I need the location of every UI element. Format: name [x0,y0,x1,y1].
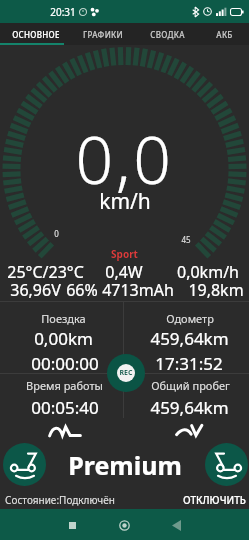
staticText: REC [119,368,133,378]
staticText: Sport [111,247,138,261]
staticText: 00:05:40 [31,396,99,419]
staticText: 36,96V [10,279,61,301]
staticText: 4713mAh [102,279,174,301]
button[interactable]: АКБ [199,23,249,45]
button[interactable]: Home [110,511,138,539]
staticText: 0,00km [34,327,93,350]
button[interactable]: СВОДКА [135,23,199,45]
button[interactable]: Back [162,511,190,539]
staticText: ГРАФИКИ [83,29,123,40]
staticText: 0,0 [75,113,174,203]
button[interactable]: Scooter [205,443,248,486]
staticText: ОТКЛЮЧИТЬ [183,493,246,507]
staticText: Время работы [26,378,103,393]
button[interactable]: Scooter [3,443,46,486]
staticText: Поездка [41,311,86,326]
staticText: Состояние:Подключён [5,493,115,507]
button[interactable]: Record [107,354,145,392]
button[interactable]: ОСНОВНОЕ [0,23,71,45]
button[interactable]: Состояние:Подключён [3,491,117,509]
button[interactable]: ГРАФИКИ [71,23,135,45]
staticText: Общий пробег [151,378,230,393]
button[interactable]: Recents [58,511,86,539]
staticText: Premium [68,448,182,482]
staticText: 66% [66,279,98,301]
staticText: km/h [99,187,151,216]
staticText: СВОДКА [150,29,185,40]
staticText: 20:31 [50,5,76,19]
staticText: 25°C/23°C [7,261,84,283]
staticText: 459,64km [150,327,229,350]
button[interactable]: ОТКЛЮЧИТЬ [180,490,249,510]
staticText: АКБ [216,29,233,40]
staticText: 45 [181,234,191,245]
staticText: Одометр [166,311,214,326]
staticText: 0,4W [105,261,143,283]
staticText: 00:00:00 [31,352,99,375]
staticText: 0,0km/h [177,261,239,283]
staticText: 459,64km [150,396,229,419]
staticText: 19,8km [188,279,244,301]
staticText: ОСНОВНОЕ [12,29,60,40]
staticText: 0 [54,228,59,239]
staticText: 17:31:52 [155,352,223,375]
